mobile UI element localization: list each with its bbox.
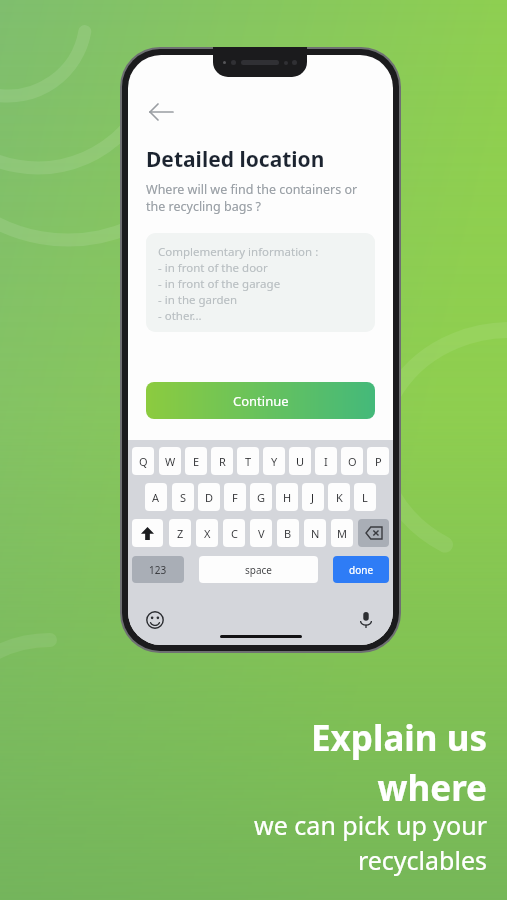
staticText: W [165,454,176,469]
staticText: F [232,490,238,505]
button[interactable]: W [159,447,181,475]
button[interactable]: X [196,519,218,547]
button[interactable]: Q [132,447,154,475]
staticText: Explain us [311,714,487,762]
button[interactable]: R [211,447,233,475]
button[interactable]: done [333,556,389,583]
staticText: V [258,526,265,541]
button[interactable]: P [367,447,389,475]
button[interactable]: space [199,556,318,583]
button[interactable]: L [354,483,376,511]
button[interactable]: Emoji [144,609,166,631]
staticText: P [375,454,382,469]
staticText: O [348,454,357,469]
button[interactable]: H [276,483,298,511]
button[interactable]: E [185,447,207,475]
button[interactable]: T [237,447,259,475]
button[interactable]: G [250,483,272,511]
button[interactable]: N [304,519,326,547]
staticText: D [205,490,214,505]
staticText: B [284,526,292,541]
staticText: space [245,563,272,577]
button[interactable]: K [328,483,350,511]
staticText: done [349,563,374,577]
staticText: U [296,454,305,469]
button[interactable]: Voice input [355,609,377,631]
staticText: T [245,454,252,469]
staticText: R [219,454,226,469]
staticText: K [336,490,343,505]
button[interactable]: B [277,519,299,547]
button[interactable]: 123 [132,556,184,583]
staticText: L [362,490,368,505]
staticText: we can pick up your [254,808,487,842]
staticText: G [257,490,266,505]
button[interactable]: Complementary information : - in front o… [146,233,375,332]
staticText: Z [177,526,184,541]
button[interactable]: I [315,447,337,475]
button[interactable]: Back [144,95,178,129]
button[interactable]: D [198,483,220,511]
staticText: where [377,764,487,812]
staticText: C [231,526,238,541]
staticText: Detailed location [146,145,325,174]
staticText: H [283,490,292,505]
staticText: 123 [149,563,167,577]
staticText: N [311,526,320,541]
button[interactable]: U [289,447,311,475]
button[interactable]: S [172,483,194,511]
button[interactable]: A [145,483,167,511]
staticText: Y [271,454,278,469]
staticText: Continue [233,392,289,410]
button[interactable]: O [341,447,363,475]
button[interactable]: M [331,519,353,547]
staticText: A [152,490,160,505]
button[interactable]: V [250,519,272,547]
staticText: I [324,454,328,469]
button[interactable]: Backspace [358,519,389,547]
staticText: Q [139,454,148,469]
button[interactable]: F [224,483,246,511]
button[interactable]: C [223,519,245,547]
staticText: recyclables [357,843,487,877]
staticText: Where will we find the containers or the… [146,181,358,215]
button[interactable]: J [302,483,324,511]
button[interactable]: Z [169,519,191,547]
staticText: X [204,526,211,541]
staticText: J [311,490,315,505]
button[interactable]: Continue [146,382,375,419]
staticText: S [180,490,187,505]
staticText: E [193,454,200,469]
staticText: Complementary information : - in front o… [158,244,319,324]
button[interactable]: Y [263,447,285,475]
button[interactable]: Shift [132,519,163,547]
staticText: M [337,526,347,541]
